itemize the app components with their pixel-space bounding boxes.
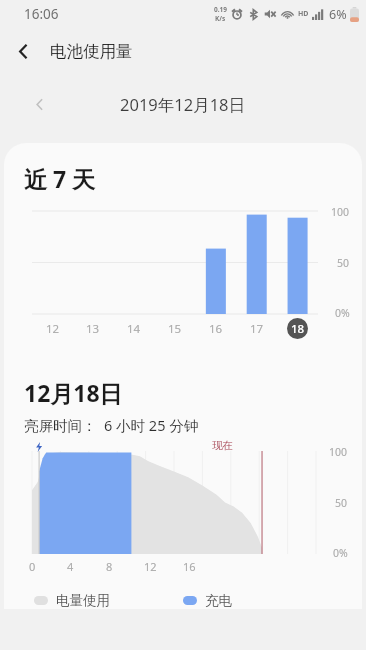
staticText: 14 (127, 321, 141, 337)
staticText: 12 (144, 559, 157, 574)
button[interactable]: 充电 (183, 592, 332, 609)
staticText: 充电 (205, 592, 232, 609)
staticText: 亮屏时间： 6 小时 25 分钟 (24, 415, 199, 435)
staticText: 0% (335, 306, 350, 320)
button[interactable]: 17 (246, 318, 267, 339)
staticText: 4 (67, 559, 74, 574)
staticText: 17 (250, 321, 264, 337)
staticText: 0 (29, 559, 36, 574)
staticText: 6% (329, 6, 347, 23)
button[interactable]: 13 (82, 318, 103, 339)
staticText: HD (298, 9, 309, 19)
staticText: 16 (209, 321, 223, 337)
staticText: 0% (333, 546, 348, 560)
staticText: 15 (168, 321, 182, 337)
button[interactable]: 16 (205, 318, 226, 339)
button[interactable]: 14 (123, 318, 144, 339)
button[interactable]: 18 (287, 318, 308, 339)
staticText: 18 (291, 321, 305, 337)
staticText: 12 (46, 321, 60, 337)
staticText: 8 (106, 559, 113, 574)
button[interactable]: 电量使用 (34, 592, 183, 609)
staticText: 现在 (212, 439, 233, 452)
button[interactable]: 前一天 (22, 87, 56, 121)
staticText: 16:06 (24, 5, 59, 23)
staticText: K/s (215, 14, 226, 23)
staticText: 电池使用量 (50, 41, 133, 62)
button[interactable]: 返回 (0, 28, 46, 74)
staticText: 50 (335, 496, 348, 510)
staticText: 50 (337, 256, 350, 270)
staticText: 16 (183, 559, 196, 574)
staticText: 12月18日 (24, 377, 123, 408)
staticText: 100 (331, 205, 350, 219)
button[interactable]: 12 (42, 318, 63, 339)
staticText: 100 (329, 445, 348, 459)
staticText: 电量使用 (56, 592, 110, 609)
staticText: 近 7 天 (24, 163, 96, 194)
button[interactable]: 15 (164, 318, 185, 339)
staticText: 2019年12月18日 (120, 93, 246, 116)
staticText: 13 (86, 321, 100, 337)
staticText: 0.19 (214, 5, 227, 14)
